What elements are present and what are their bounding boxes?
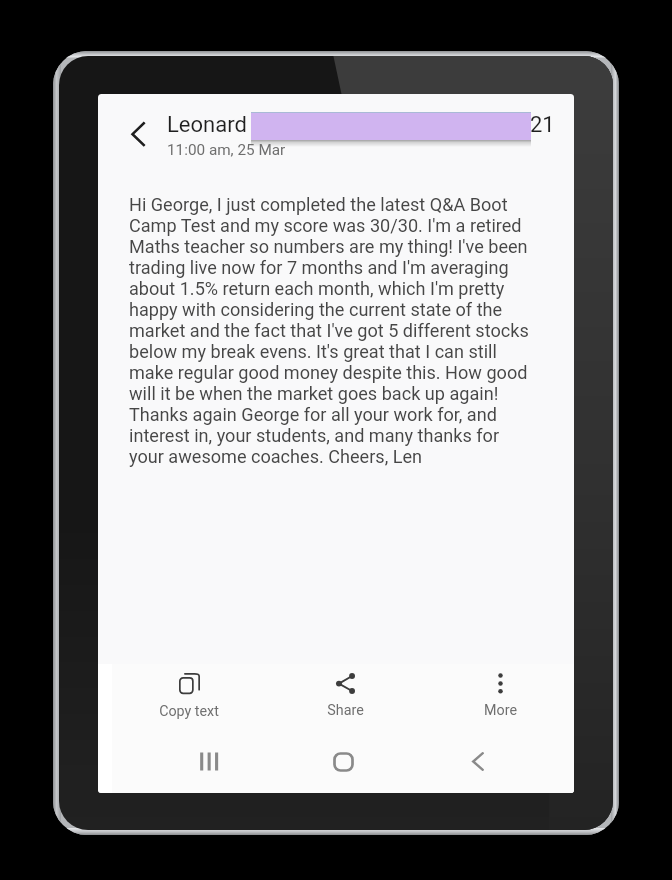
staticText: Copy text bbox=[159, 703, 219, 720]
button[interactable]: More bbox=[420, 664, 574, 728]
button[interactable]: Back bbox=[450, 730, 506, 793]
staticText: Leonard bbox=[167, 112, 247, 138]
button[interactable]: Share bbox=[266, 664, 420, 728]
staticText: 21 bbox=[530, 112, 555, 138]
staticText: Share bbox=[327, 702, 364, 719]
button[interactable]: Recents bbox=[181, 730, 237, 793]
staticText: 11:00 am, 25 Mar bbox=[167, 141, 286, 159]
button[interactable]: Home bbox=[315, 730, 371, 793]
staticText: Hi George, I just completed the latest Q… bbox=[129, 194, 530, 467]
button[interactable]: Back bbox=[116, 112, 160, 156]
button[interactable]: Copy text bbox=[112, 664, 266, 728]
staticText: More bbox=[484, 702, 517, 719]
